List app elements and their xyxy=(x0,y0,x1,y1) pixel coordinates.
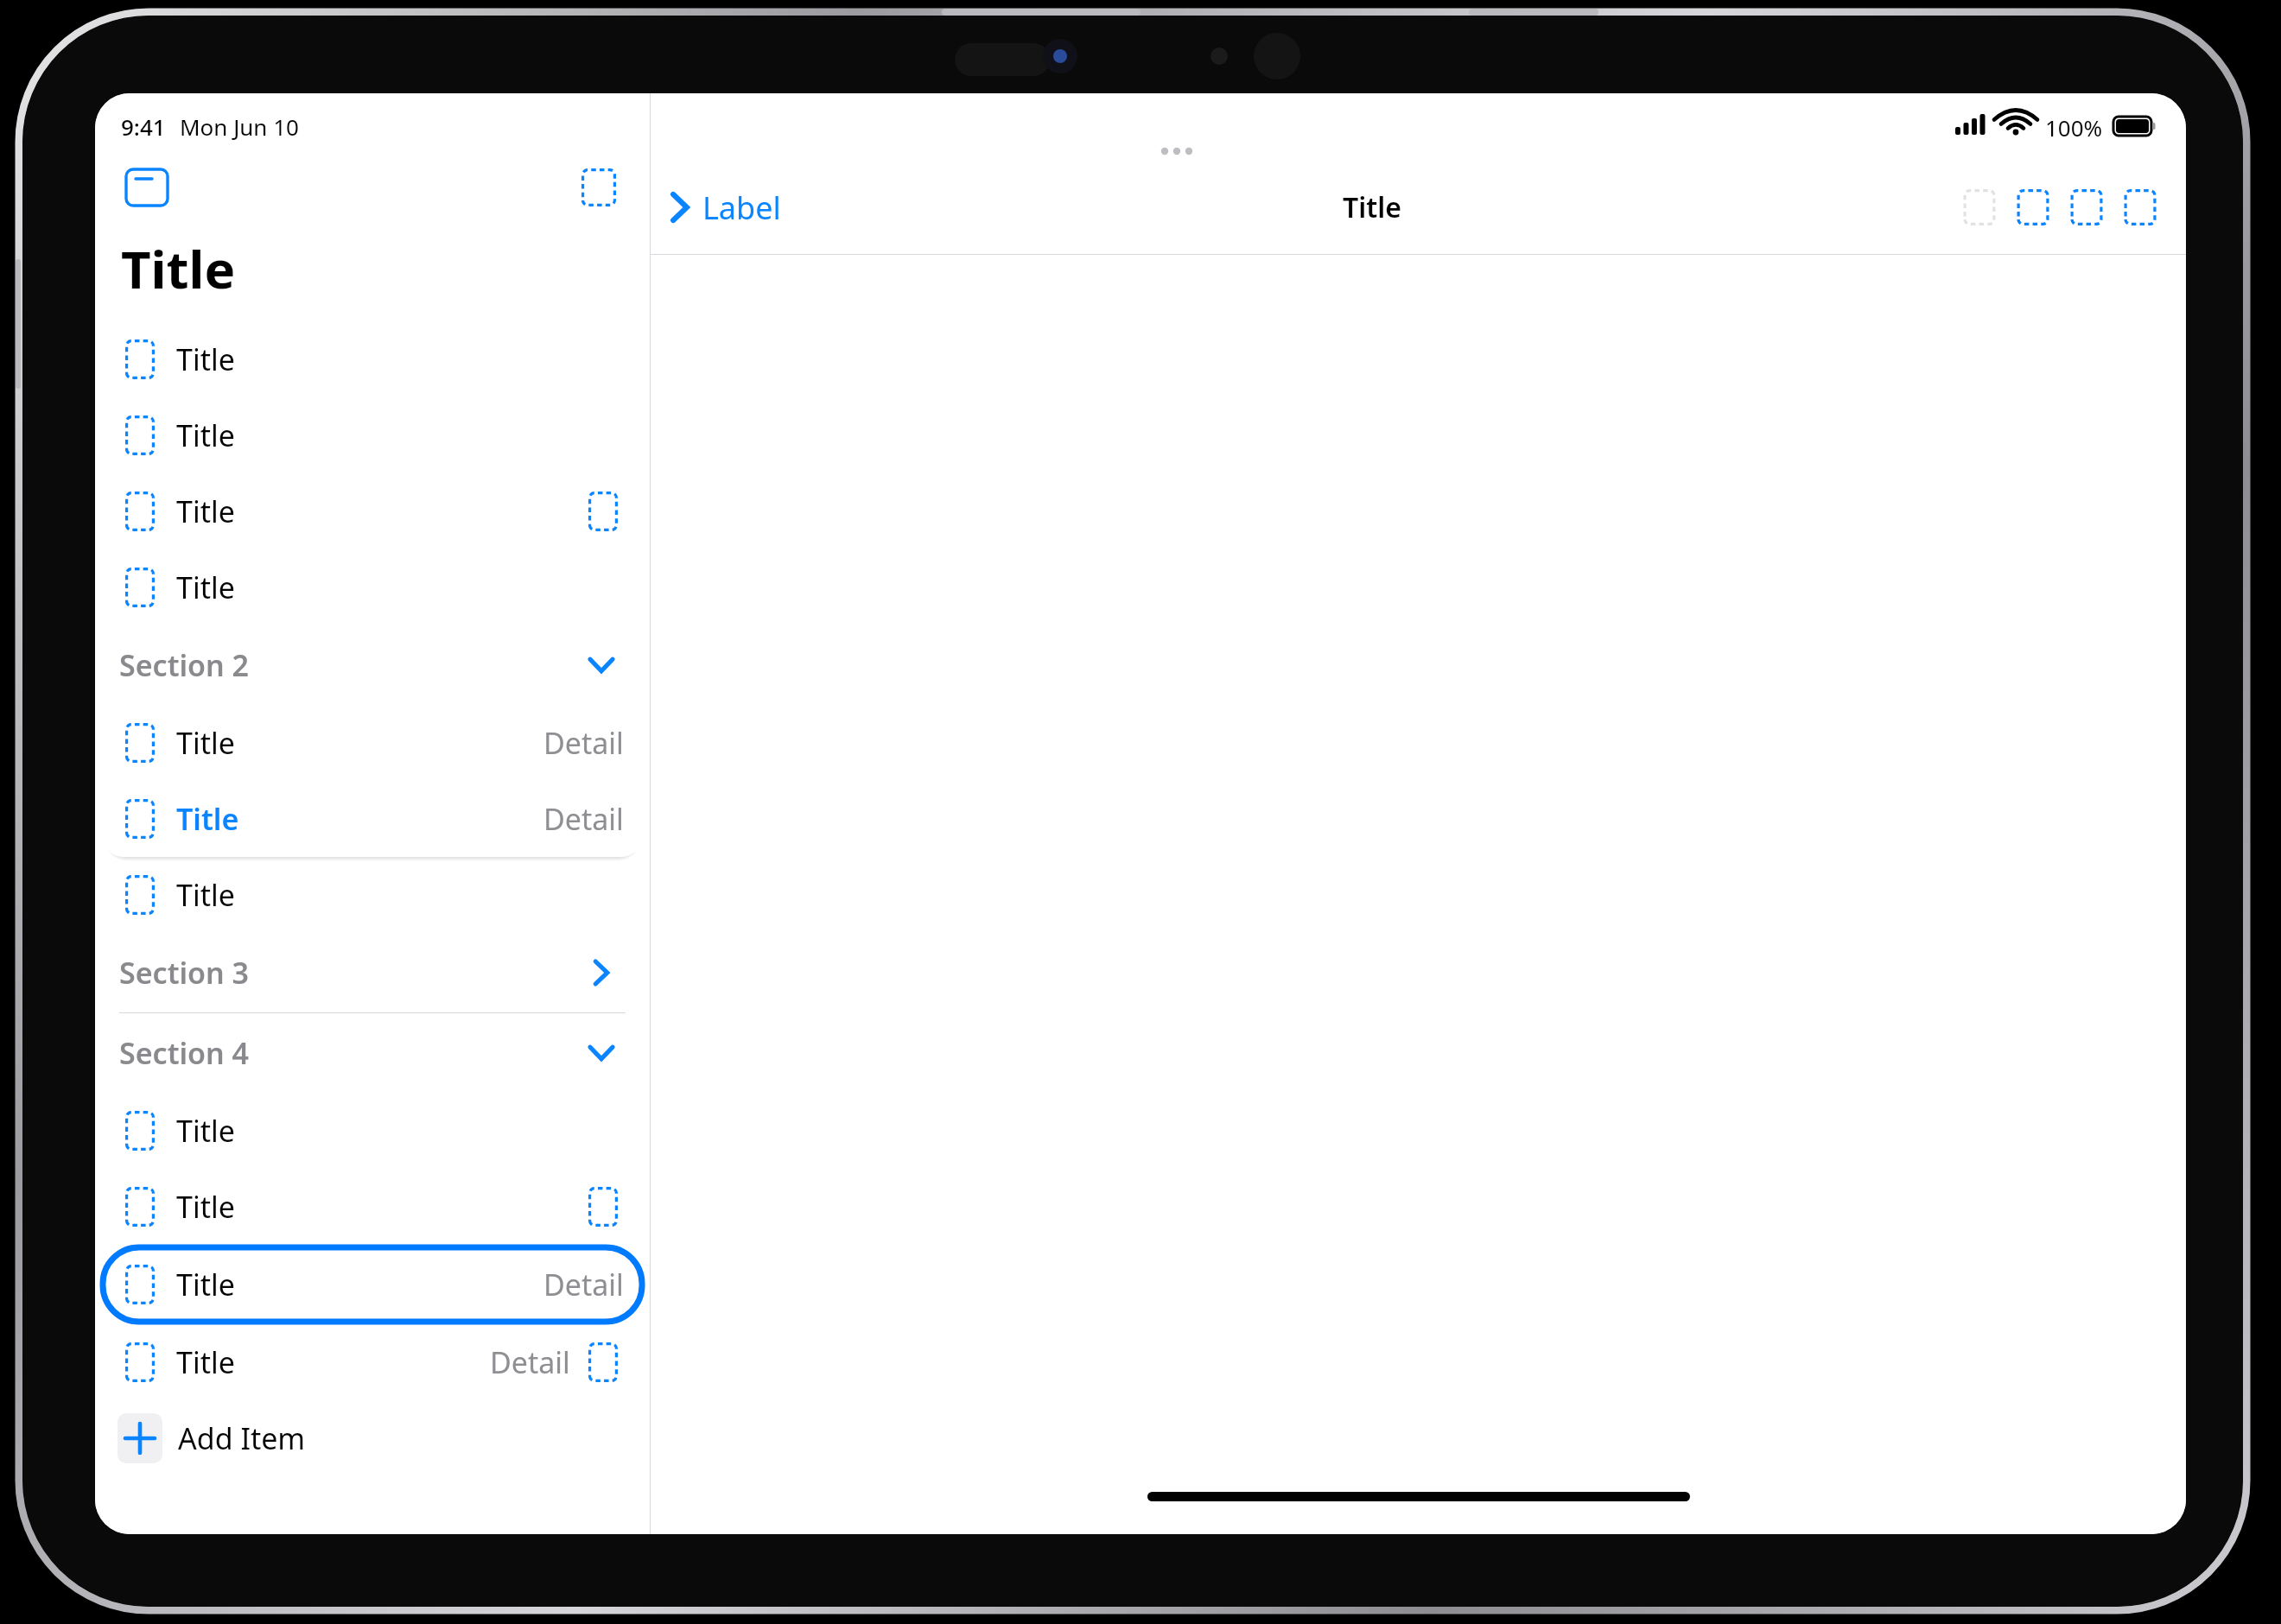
button[interactable]: Title xyxy=(95,473,650,549)
button[interactable]: Action 1 xyxy=(1953,181,2006,234)
staticText: Label xyxy=(702,187,781,229)
staticText: Detail xyxy=(543,799,624,839)
staticText: Title xyxy=(176,1187,235,1227)
button[interactable]: Title xyxy=(95,397,650,473)
staticText: Title xyxy=(176,799,239,839)
button[interactable]: Section 3 xyxy=(95,933,650,1012)
staticText: Mon Jun 10 xyxy=(180,111,299,142)
staticText: 100% xyxy=(2045,112,2103,142)
other: Collapse Section 4 xyxy=(581,1032,622,1074)
other: Collapse Section 2 xyxy=(581,644,622,686)
button[interactable]: Toolbar Action xyxy=(572,161,626,214)
staticText: Detail xyxy=(543,1265,624,1304)
button[interactable]: Label xyxy=(651,176,793,238)
button[interactable]: Title xyxy=(100,1245,645,1324)
staticText: Title xyxy=(176,1342,235,1382)
staticText: Section 3 xyxy=(119,953,250,993)
staticText: Title xyxy=(176,1265,235,1304)
staticText: Section 4 xyxy=(119,1033,250,1073)
staticText: Section 2 xyxy=(119,645,250,685)
staticText: Title xyxy=(176,1111,235,1151)
staticText: Detail xyxy=(543,723,624,763)
staticText: Title xyxy=(176,875,235,915)
staticText: Title xyxy=(176,416,235,455)
button[interactable]: Action 3 xyxy=(2060,181,2113,234)
button[interactable]: Title xyxy=(95,1169,650,1245)
button[interactable]: Title xyxy=(104,781,641,857)
staticText: Title xyxy=(1343,188,1402,226)
staticText: Detail xyxy=(490,1342,570,1382)
button[interactable]: Title xyxy=(95,1093,650,1169)
button[interactable]: Action 4 xyxy=(2113,181,2167,234)
button[interactable]: Title xyxy=(95,549,650,625)
staticText: 9:41 xyxy=(121,111,166,142)
staticText: Title xyxy=(176,492,235,531)
button[interactable]: Action 2 xyxy=(2006,181,2060,234)
button[interactable]: Title xyxy=(95,1324,650,1400)
staticText: Add Item xyxy=(178,1418,306,1458)
button[interactable]: Title xyxy=(95,321,650,397)
staticText: Title xyxy=(176,339,235,379)
button[interactable]: Add Item xyxy=(95,1400,650,1476)
staticText: Title xyxy=(176,723,235,763)
button[interactable]: Section 2 xyxy=(95,625,650,705)
button[interactable]: Title xyxy=(95,857,650,933)
button[interactable]: Section 4 xyxy=(95,1013,650,1093)
button[interactable]: Title xyxy=(95,705,650,781)
other: Expand Section 3 xyxy=(581,952,622,993)
staticText: Title xyxy=(176,568,235,607)
staticText: Title xyxy=(121,233,236,304)
button[interactable]: Toggle Sidebar xyxy=(119,161,175,214)
